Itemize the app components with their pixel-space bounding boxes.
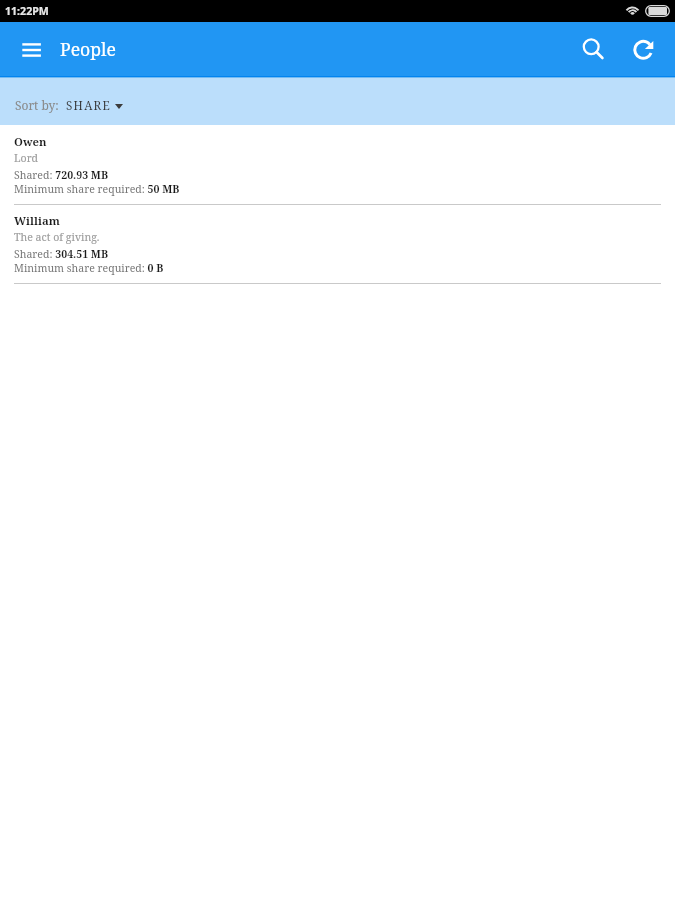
- staticText: Owen: [14, 134, 47, 149]
- staticText: Shared: 720.93 MB: [14, 168, 108, 182]
- other: Battery: [645, 5, 670, 17]
- button[interactable]: Refresh: [631, 37, 655, 61]
- staticText: 11:22PM: [5, 4, 49, 18]
- staticText: Shared: 304.51 MB: [14, 247, 108, 261]
- other: Wi-Fi: [625, 4, 640, 16]
- staticText: Minimum share required: 50 MB: [14, 182, 180, 196]
- button[interactable]: Owen: [0, 125, 675, 204]
- button[interactable]: Open navigation drawer: [14, 36, 36, 62]
- staticText: William: [14, 213, 60, 228]
- button[interactable]: SHARE: [62, 91, 126, 113]
- staticText: SHARE: [66, 97, 112, 113]
- staticText: The act of giving.: [14, 230, 100, 244]
- staticText: Lord: [14, 151, 39, 165]
- button[interactable]: Search: [580, 36, 604, 60]
- button[interactable]: William: [0, 204, 675, 283]
- staticText: Minimum share required: 0 B: [14, 261, 164, 275]
- staticText: People: [60, 37, 116, 61]
- staticText: Sort by:: [15, 97, 59, 113]
